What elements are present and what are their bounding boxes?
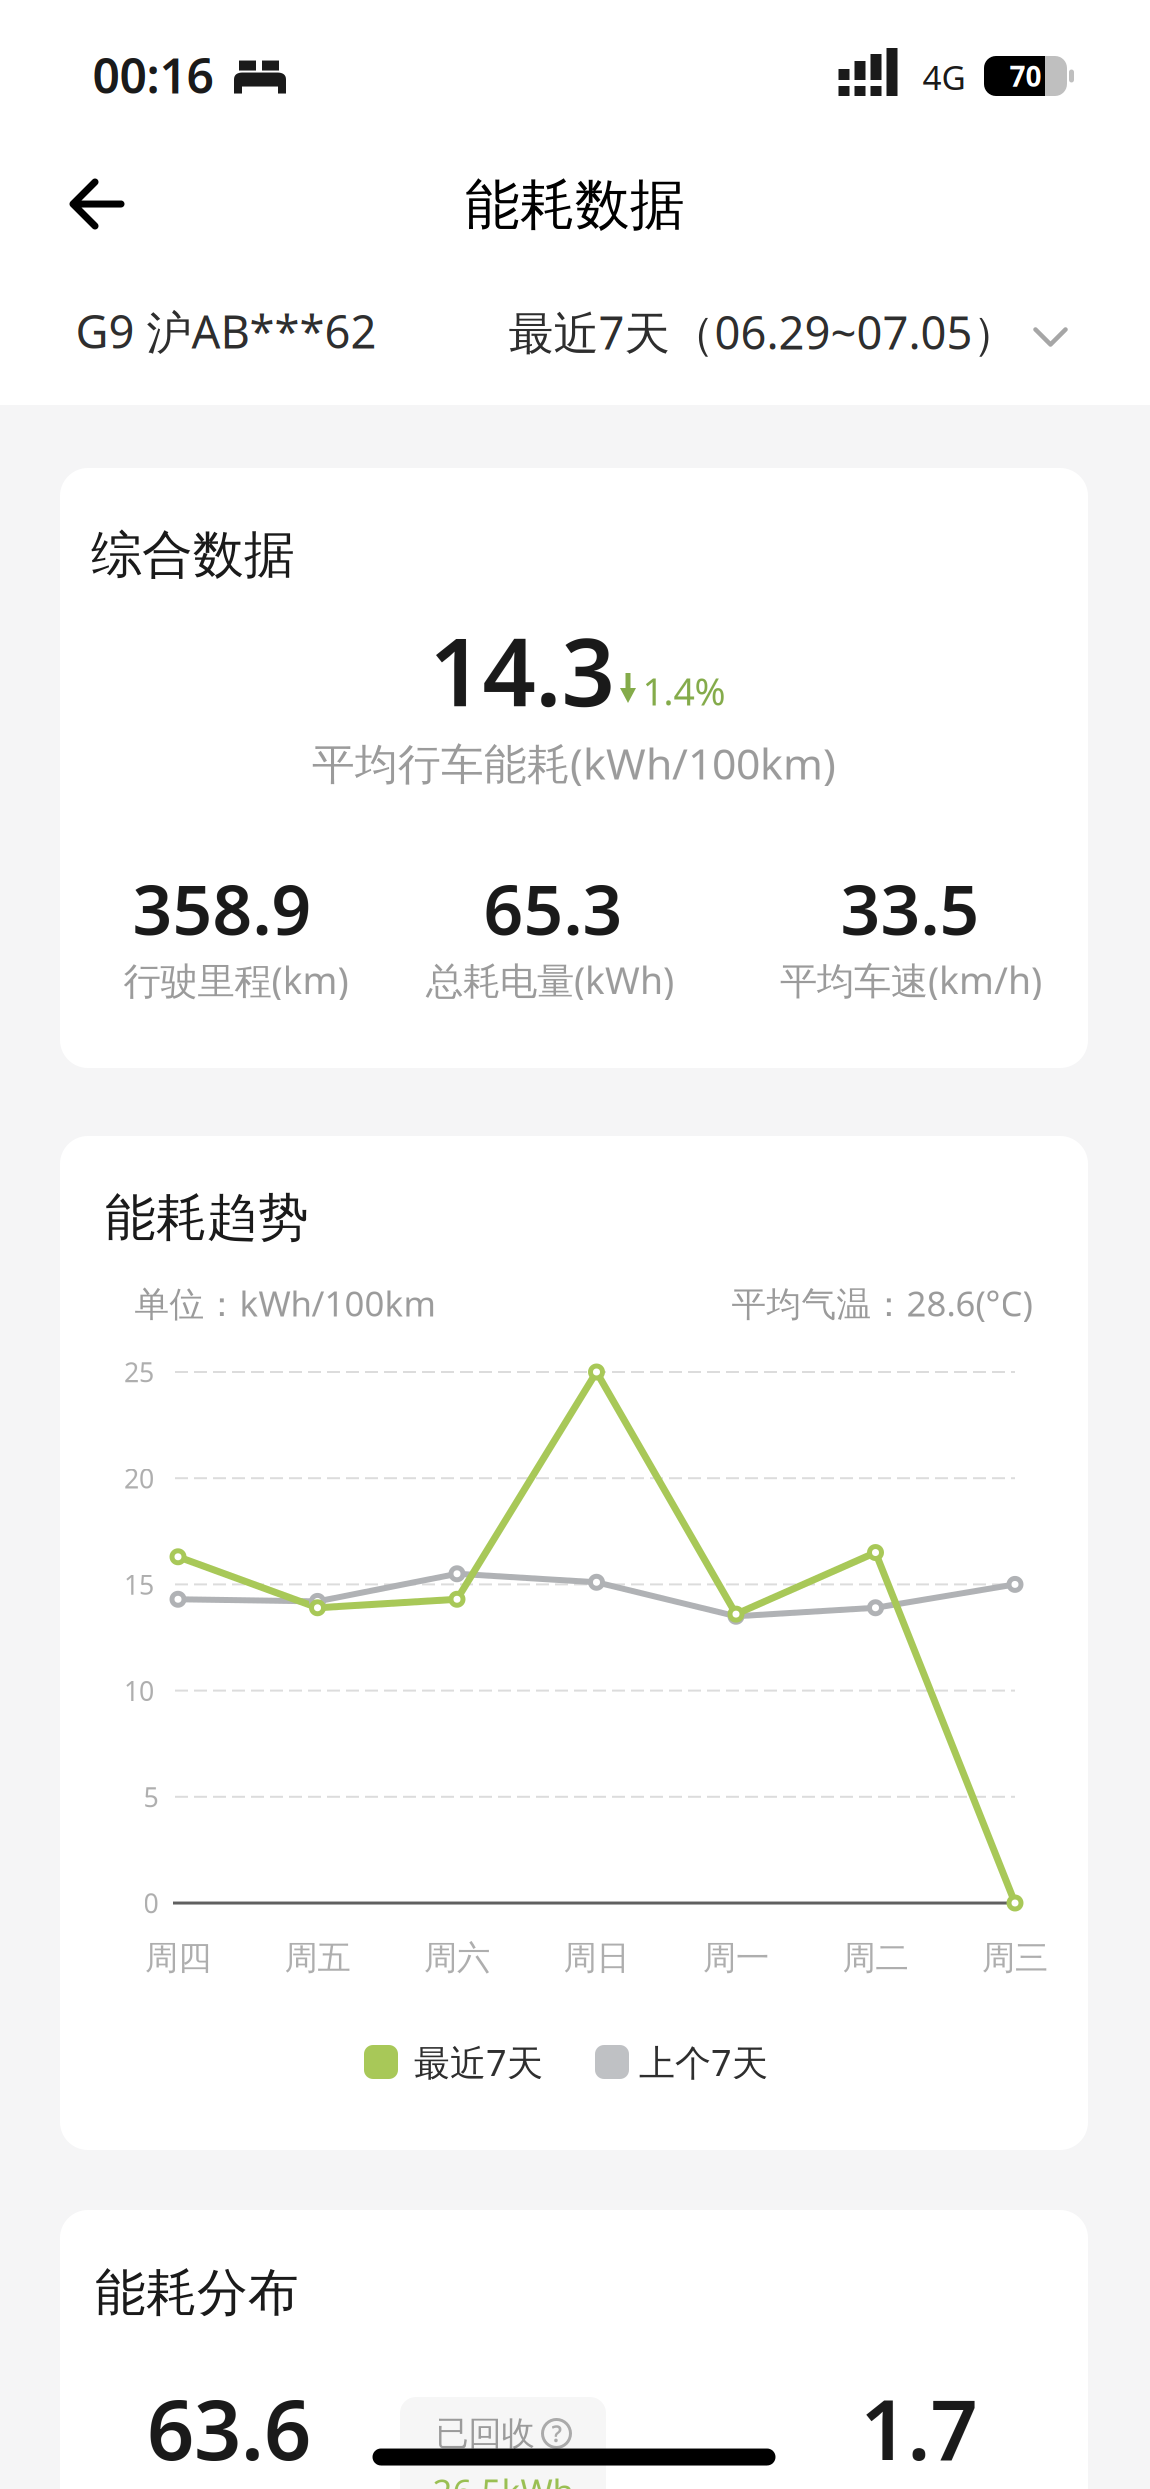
staticText: 26.5kWh	[432, 2468, 573, 2489]
staticText: 总耗电量(kWh)	[426, 955, 674, 1005]
staticText: 20	[124, 1460, 154, 1496]
button[interactable]: 选择时间范围	[508, 302, 1067, 362]
staticText: 10	[124, 1673, 154, 1708]
staticText: 周二	[842, 1937, 908, 1978]
staticText: 63.6	[147, 2373, 311, 2483]
staticText: 最近7天（06.29~07.05）	[508, 302, 1017, 362]
staticText: 最近7天	[414, 2038, 543, 2086]
staticText: 单位：kWh/100km	[134, 1280, 435, 1326]
button[interactable]: 返回	[47, 157, 145, 251]
staticText: 65.3	[483, 862, 622, 954]
staticText: 周五	[284, 1937, 350, 1978]
staticText: 平均气温：28.6(°C)	[731, 1280, 1032, 1326]
button[interactable]: 已回收说明	[435, 2413, 570, 2454]
staticText: 70	[1009, 57, 1041, 95]
staticText: 上个7天	[639, 2038, 768, 2086]
staticText: 能耗趋势	[105, 1187, 309, 1249]
staticText: 综合数据	[91, 524, 295, 586]
staticText: 能耗数据	[465, 171, 685, 238]
staticText: G9 沪AB***62	[75, 301, 376, 361]
staticText: 已回收	[435, 2413, 534, 2454]
staticText: 能耗分布	[95, 2262, 299, 2324]
staticText: 4G	[922, 55, 965, 99]
staticText: 33.5	[840, 862, 979, 954]
staticText: 周一	[703, 1937, 769, 1978]
staticText: 1.4%	[642, 666, 725, 716]
staticText: 行驶里程(km)	[123, 955, 348, 1005]
staticText: 00:16	[92, 43, 213, 107]
staticText: 15	[124, 1567, 154, 1602]
staticText: 1.7	[860, 2373, 977, 2483]
staticText: 周六	[424, 1937, 490, 1978]
staticText: 平均车速(km/h)	[780, 955, 1042, 1005]
staticText: 25	[124, 1354, 154, 1390]
staticText: 5	[143, 1779, 158, 1814]
staticText: 358.9	[132, 862, 311, 954]
staticText: 周日	[563, 1937, 629, 1978]
staticText: 周四	[145, 1937, 211, 1978]
staticText: 平均行车能耗(kWh/100km)	[312, 735, 836, 791]
staticText: 14.3	[429, 608, 614, 732]
staticText: 0	[143, 1885, 158, 1921]
staticText: 周三	[982, 1937, 1048, 1978]
staticText: ?	[551, 2418, 561, 2448]
